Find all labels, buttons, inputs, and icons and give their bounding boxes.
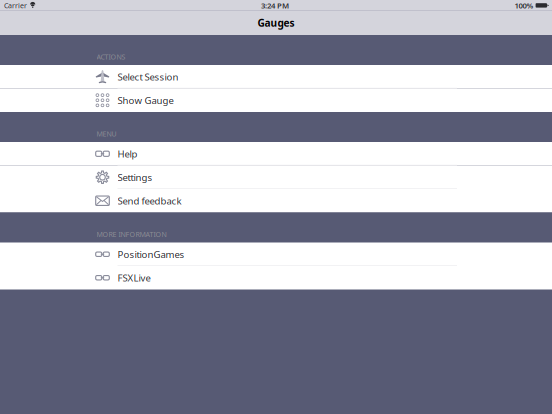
staticText: MORE INFORMATION — [96, 229, 166, 239]
staticText: MENU — [96, 129, 116, 138]
staticText: Settings — [117, 171, 152, 184]
button[interactable]: Settings — [0, 165, 552, 189]
button[interactable]: Send feedback — [0, 189, 552, 212]
staticText: PositionGames — [117, 248, 184, 261]
staticText: Help — [117, 147, 137, 160]
staticText: Carrier — [4, 1, 27, 10]
button[interactable]: Show Gauge — [0, 88, 552, 112]
button[interactable]: Select Session — [0, 65, 552, 88]
staticText: 3:24 PM — [261, 0, 289, 11]
button[interactable]: Help — [0, 142, 552, 165]
button[interactable]: PositionGames — [0, 242, 552, 266]
staticText: 100% — [515, 0, 534, 11]
staticText: Show Gauge — [117, 94, 173, 107]
staticText: Select Session — [117, 70, 178, 83]
staticText: Gauges — [257, 16, 294, 30]
staticText: ACTIONS — [96, 52, 125, 61]
staticText: FSXLive — [117, 271, 150, 284]
staticText: Send feedback — [117, 194, 181, 207]
button[interactable]: FSXLive — [0, 266, 552, 289]
